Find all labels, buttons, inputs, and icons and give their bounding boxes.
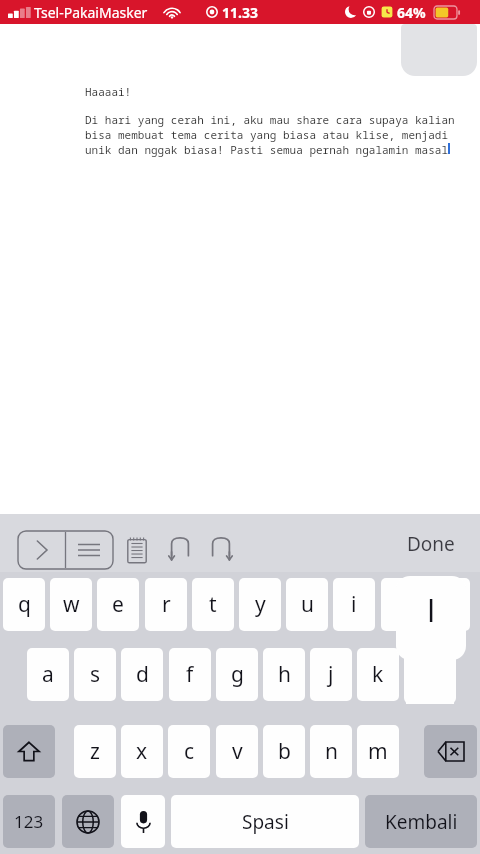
button[interactable]: h bbox=[263, 648, 305, 701]
button[interactable]: Change language bbox=[62, 795, 114, 848]
staticText: q bbox=[18, 590, 31, 619]
button[interactable]: i bbox=[333, 578, 375, 631]
button[interactable]: Shift bbox=[3, 725, 55, 778]
button[interactable]: m bbox=[357, 725, 399, 778]
staticText: Haaaai! bbox=[85, 84, 132, 99]
staticText: c bbox=[184, 737, 195, 766]
staticText: f bbox=[186, 660, 194, 689]
staticText: z bbox=[90, 737, 100, 766]
staticText: 11.33 bbox=[222, 3, 258, 22]
staticText: s bbox=[90, 660, 101, 689]
staticText: u bbox=[301, 590, 314, 619]
button[interactable]: d bbox=[121, 648, 163, 701]
button[interactable]: Voice input bbox=[121, 795, 165, 848]
staticText: Kembali bbox=[385, 809, 458, 835]
button[interactable]: u bbox=[286, 578, 328, 631]
staticText: g bbox=[231, 660, 244, 689]
staticText: n bbox=[325, 737, 338, 766]
button[interactable]: k bbox=[357, 648, 399, 701]
staticText: l bbox=[427, 590, 435, 631]
staticText: Spasi bbox=[242, 809, 289, 835]
staticText: x bbox=[136, 737, 148, 766]
staticText: y bbox=[255, 590, 266, 619]
button[interactable]: j bbox=[310, 648, 352, 701]
button[interactable]: Undo bbox=[163, 534, 197, 564]
staticText: Di hari yang cerah ini, aku mau share ca… bbox=[85, 112, 455, 127]
staticText: k bbox=[372, 660, 384, 689]
button[interactable]: s bbox=[74, 648, 116, 701]
button[interactable]: c bbox=[168, 725, 210, 778]
button[interactable]: e bbox=[97, 578, 139, 631]
button[interactable]: Notes bbox=[122, 533, 152, 567]
staticText: a bbox=[42, 660, 54, 689]
button[interactable]: q bbox=[3, 578, 45, 631]
staticText: b bbox=[278, 737, 291, 766]
staticText: w bbox=[63, 590, 80, 619]
button[interactable]: f bbox=[169, 648, 211, 701]
button[interactable]: y bbox=[239, 578, 281, 631]
button[interactable]: w bbox=[50, 578, 92, 631]
staticText: v bbox=[232, 737, 243, 766]
button[interactable]: b bbox=[263, 725, 305, 778]
button[interactable]: a bbox=[27, 648, 69, 701]
staticText: j bbox=[328, 660, 334, 689]
button[interactable]: Spasi bbox=[171, 795, 359, 848]
staticText: t bbox=[209, 590, 217, 619]
button[interactable]: t bbox=[192, 578, 234, 631]
staticText: h bbox=[278, 660, 291, 689]
staticText: Done bbox=[407, 531, 455, 557]
button[interactable]: List format bbox=[65, 531, 113, 569]
button[interactable]: r bbox=[145, 578, 187, 631]
button[interactable]: Indent bbox=[18, 531, 65, 569]
staticText: bisa membuat tema cerita yang biasa atau… bbox=[85, 127, 448, 142]
button[interactable]: n bbox=[310, 725, 352, 778]
button[interactable]: Kembali bbox=[365, 795, 477, 848]
staticText: Tsel-PakaiMasker bbox=[34, 3, 148, 22]
staticText: unik dan nggak biasa! Pasti semua pernah… bbox=[85, 142, 448, 157]
button[interactable]: Redo bbox=[204, 534, 238, 564]
other: l bbox=[396, 576, 466, 660]
button[interactable]: p bbox=[428, 578, 470, 631]
staticText: e bbox=[112, 590, 124, 619]
staticText: d bbox=[136, 660, 149, 689]
button[interactable]: Done bbox=[396, 528, 466, 560]
button[interactable]: 123 bbox=[3, 795, 55, 848]
button[interactable]: v bbox=[216, 725, 258, 778]
button[interactable]: Backspace bbox=[424, 725, 477, 778]
staticText: 64% bbox=[397, 3, 426, 22]
button[interactable]: z bbox=[74, 725, 116, 778]
staticText: 123 bbox=[14, 810, 44, 833]
staticText: m bbox=[368, 737, 388, 766]
button[interactable]: x bbox=[121, 725, 163, 778]
staticText: i bbox=[351, 590, 357, 619]
button[interactable]: g bbox=[216, 648, 258, 701]
staticText: r bbox=[162, 590, 171, 619]
